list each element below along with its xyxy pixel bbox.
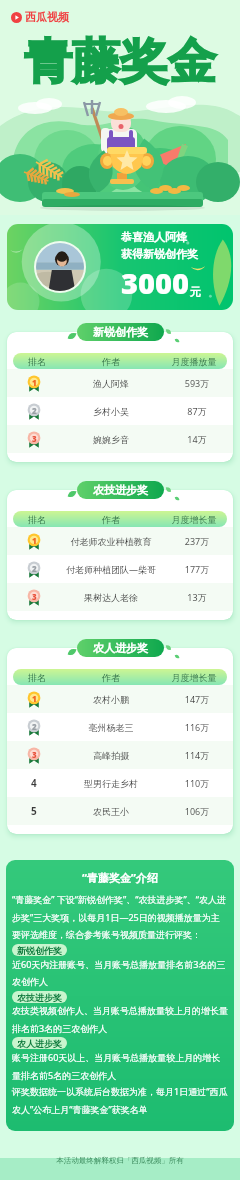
staticText: 农人进步奖 [93,641,148,655]
staticText: 果树达人老徐 [61,592,161,603]
staticText: 1 [32,693,37,704]
staticText: 农技进步奖 [93,483,148,497]
staticText: 1 [32,377,37,388]
staticText: 近60天内注册账号、当月账号总播放量排名前3名的三农创作人 [12,958,228,988]
staticText: 1 [32,535,37,546]
staticText: 亳州杨老三 [61,722,161,733]
staticText: 付老师种植团队—柴哥 [61,563,161,575]
staticText: 新锐创作奖 [93,325,148,339]
button[interactable]: 3 [7,583,233,611]
staticText: 婉婉乡音 [61,434,161,445]
staticText: 106万 [161,805,233,817]
staticText: 西瓜视频 [25,10,69,24]
staticText: 农村小鹏 [61,694,161,705]
staticText: 作者 [61,672,161,683]
staticText: 本活动最终解释权归「西瓜视频」所有 [0,1156,240,1165]
staticText: 作者 [61,356,161,367]
button[interactable]: 1 [7,527,233,555]
staticText: 5 [31,804,37,818]
staticText: 14万 [161,433,233,445]
staticText: 作者 [61,514,161,525]
staticText: 青藤奖金 [24,32,216,92]
staticText: 排名 [13,514,61,525]
staticText: 110万 [161,777,233,789]
button[interactable]: 农人进步奖 [77,639,164,657]
button[interactable]: 2 [7,555,233,583]
button[interactable]: 2 [7,397,233,425]
staticText: 高峰拍摄 [61,750,161,761]
staticText: 排名 [13,356,61,367]
staticText: 农技类视频创作人、当月账号总播放量较上月的增长量排名前3名的三农创作人 [12,1005,228,1034]
staticText: 排名 [13,672,61,683]
staticText: 177万 [161,563,233,575]
button[interactable]: 5 [7,797,233,825]
staticText: 147万 [161,693,233,705]
staticText: 2 [32,405,37,416]
staticText: 3 [32,749,37,760]
staticText: 4 [31,776,37,790]
staticText: 渔人阿烽 [61,378,161,389]
button[interactable]: 恭喜渔人阿烽 [7,224,233,310]
staticText: 114万 [161,749,233,761]
button[interactable]: 1 [7,369,233,397]
staticText: 593万 [161,377,233,389]
button[interactable]: 4 [7,769,233,797]
button[interactable]: 1 [7,685,233,713]
staticText: 农人进步奖 [17,1038,62,1049]
staticText: 元 [190,285,201,299]
staticText: 获得新锐创作奖 [121,247,198,261]
staticText: 3 [32,591,37,602]
button[interactable]: 2 [7,713,233,741]
staticText: 月度增长量 [161,514,227,525]
button[interactable]: 西瓜视频 [11,10,69,24]
staticText: 恭喜渔人阿烽 [121,230,187,244]
staticText: 新锐创作奖 [17,945,62,956]
staticText: 2 [32,563,37,574]
staticText: 付老师农业种植教育 [61,536,161,547]
staticText: 13万 [161,591,233,603]
button[interactable]: 3 [7,425,233,453]
staticText: 型男行走乡村 [61,778,161,789]
staticText: “青藤奖金” 下设“新锐创作奖”、“农技进步奖”、“农人进步奖”三大奖项，以每月… [12,893,228,941]
staticText: 月度播放量 [161,356,227,367]
staticText: 116万 [161,721,233,733]
staticText: 评奖数据统一以系统后台数据为准，每月1日通过“西瓜农人”公布上月“青藤奖金”获奖… [12,1085,228,1115]
staticText: 3000 [121,263,189,302]
staticText: 农民王小 [61,806,161,817]
staticText: “青藤奖金”介绍 [12,870,228,885]
staticText: 月度增长量 [161,672,227,683]
button[interactable]: 3 [7,741,233,769]
staticText: 3 [32,433,37,444]
staticText: 乡村小吴 [61,406,161,417]
button[interactable]: 新锐创作奖 [77,323,164,341]
staticText: 账号注册60天以上、当月账号总播放量较上月的增长量排名前5名的三农创作人 [12,1051,228,1081]
staticText: 237万 [161,535,233,547]
staticText: 农技进步奖 [17,992,62,1003]
staticText: 87万 [161,405,233,417]
button[interactable]: 农技进步奖 [77,481,164,499]
staticText: 2 [32,721,37,732]
